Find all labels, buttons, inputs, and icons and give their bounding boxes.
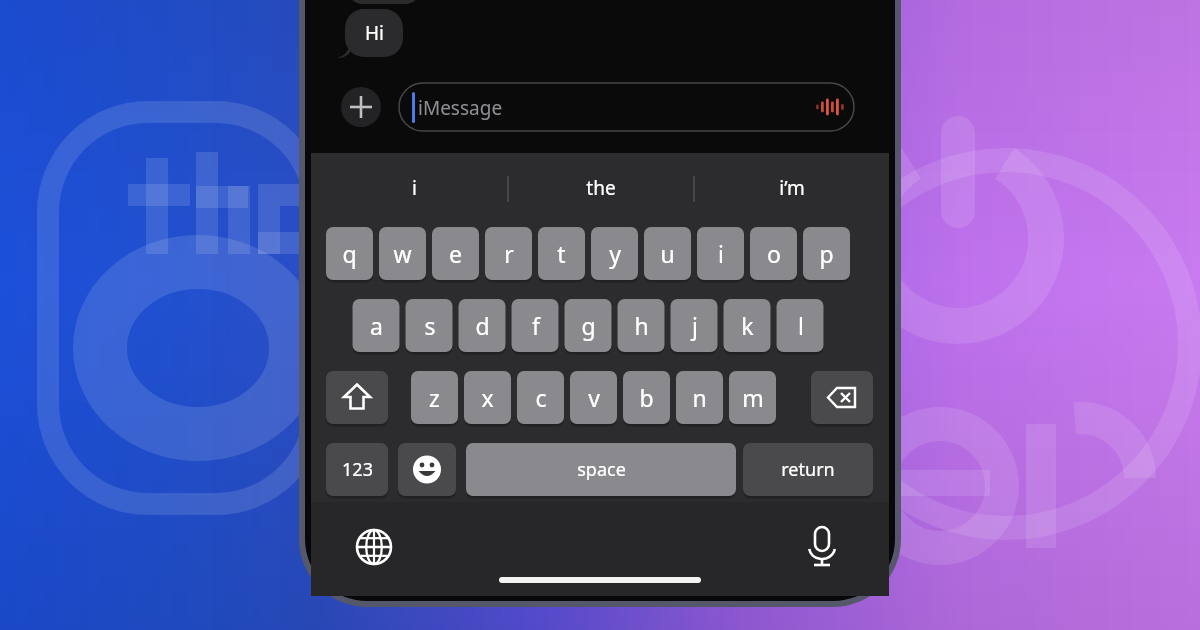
button[interactable]: c <box>517 371 564 424</box>
button[interactable]: return <box>743 443 873 496</box>
button[interactable]: Backspace <box>811 371 873 424</box>
staticText: e <box>449 238 462 269</box>
staticText: x <box>481 382 494 413</box>
staticText: r <box>504 238 514 269</box>
button[interactable]: z <box>411 371 458 424</box>
button[interactable]: Emoji keyboard <box>398 443 456 496</box>
staticText: a <box>370 310 383 341</box>
staticText: m <box>742 382 764 413</box>
button[interactable]: j <box>671 299 718 352</box>
staticText: b <box>639 382 654 413</box>
button[interactable]: v <box>570 371 617 424</box>
button[interactable]: e <box>432 227 479 280</box>
staticText: j <box>692 310 698 341</box>
button[interactable]: i’m <box>694 165 889 211</box>
button[interactable]: b <box>623 371 670 424</box>
staticText: g <box>581 310 596 341</box>
button[interactable]: k <box>724 299 771 352</box>
button[interactable]: s <box>406 299 453 352</box>
staticText: w <box>393 238 412 269</box>
button[interactable]: x <box>464 371 511 424</box>
button[interactable]: o <box>750 227 797 280</box>
button[interactable]: t <box>538 227 585 280</box>
button[interactable]: g <box>565 299 612 352</box>
staticText: the <box>586 175 616 201</box>
staticText: i’m <box>779 175 805 201</box>
staticText: y <box>609 238 621 269</box>
staticText: i <box>718 238 724 269</box>
button[interactable]: u <box>644 227 691 280</box>
staticText: t <box>557 238 566 269</box>
button[interactable]: i <box>697 227 744 280</box>
button[interactable]: Switch keyboard <box>348 521 400 573</box>
staticText: i <box>412 175 417 201</box>
button[interactable]: y <box>591 227 638 280</box>
button[interactable]: w <box>379 227 426 280</box>
button[interactable]: m <box>729 371 776 424</box>
button[interactable]: Audio message <box>806 90 852 124</box>
button[interactable]: h <box>618 299 665 352</box>
staticText: iMessage <box>418 95 503 121</box>
button[interactable]: n <box>676 371 723 424</box>
staticText: s <box>424 310 436 341</box>
button[interactable]: d <box>459 299 506 352</box>
staticText: v <box>588 382 600 413</box>
staticText: q <box>342 238 357 269</box>
button[interactable]: r <box>485 227 532 280</box>
staticText: c <box>535 382 547 413</box>
staticText: f <box>532 310 540 341</box>
button[interactable]: space <box>466 443 736 496</box>
staticText: return <box>781 457 835 482</box>
staticText: z <box>429 382 440 413</box>
button[interactable]: i <box>320 165 508 211</box>
button[interactable]: 123 <box>326 443 388 496</box>
staticText: o <box>767 238 781 269</box>
button[interactable]: q <box>326 227 373 280</box>
button[interactable]: Add attachment <box>341 87 381 127</box>
button[interactable]: Shift <box>326 371 388 424</box>
button[interactable]: Dictation <box>796 520 848 572</box>
staticText: u <box>660 238 675 269</box>
staticText: p <box>819 238 834 269</box>
button[interactable]: a <box>353 299 400 352</box>
staticText: n <box>692 382 707 413</box>
staticText: h <box>634 310 649 341</box>
staticText: l <box>798 310 804 341</box>
button[interactable]: l <box>777 299 824 352</box>
button[interactable]: p <box>803 227 850 280</box>
button[interactable]: f <box>512 299 559 352</box>
staticText: Hi <box>365 20 384 46</box>
staticText: 123 <box>342 457 373 482</box>
staticText: k <box>741 310 754 341</box>
staticText: space <box>577 457 626 482</box>
staticText: d <box>475 310 490 341</box>
button[interactable]: the <box>508 165 694 211</box>
